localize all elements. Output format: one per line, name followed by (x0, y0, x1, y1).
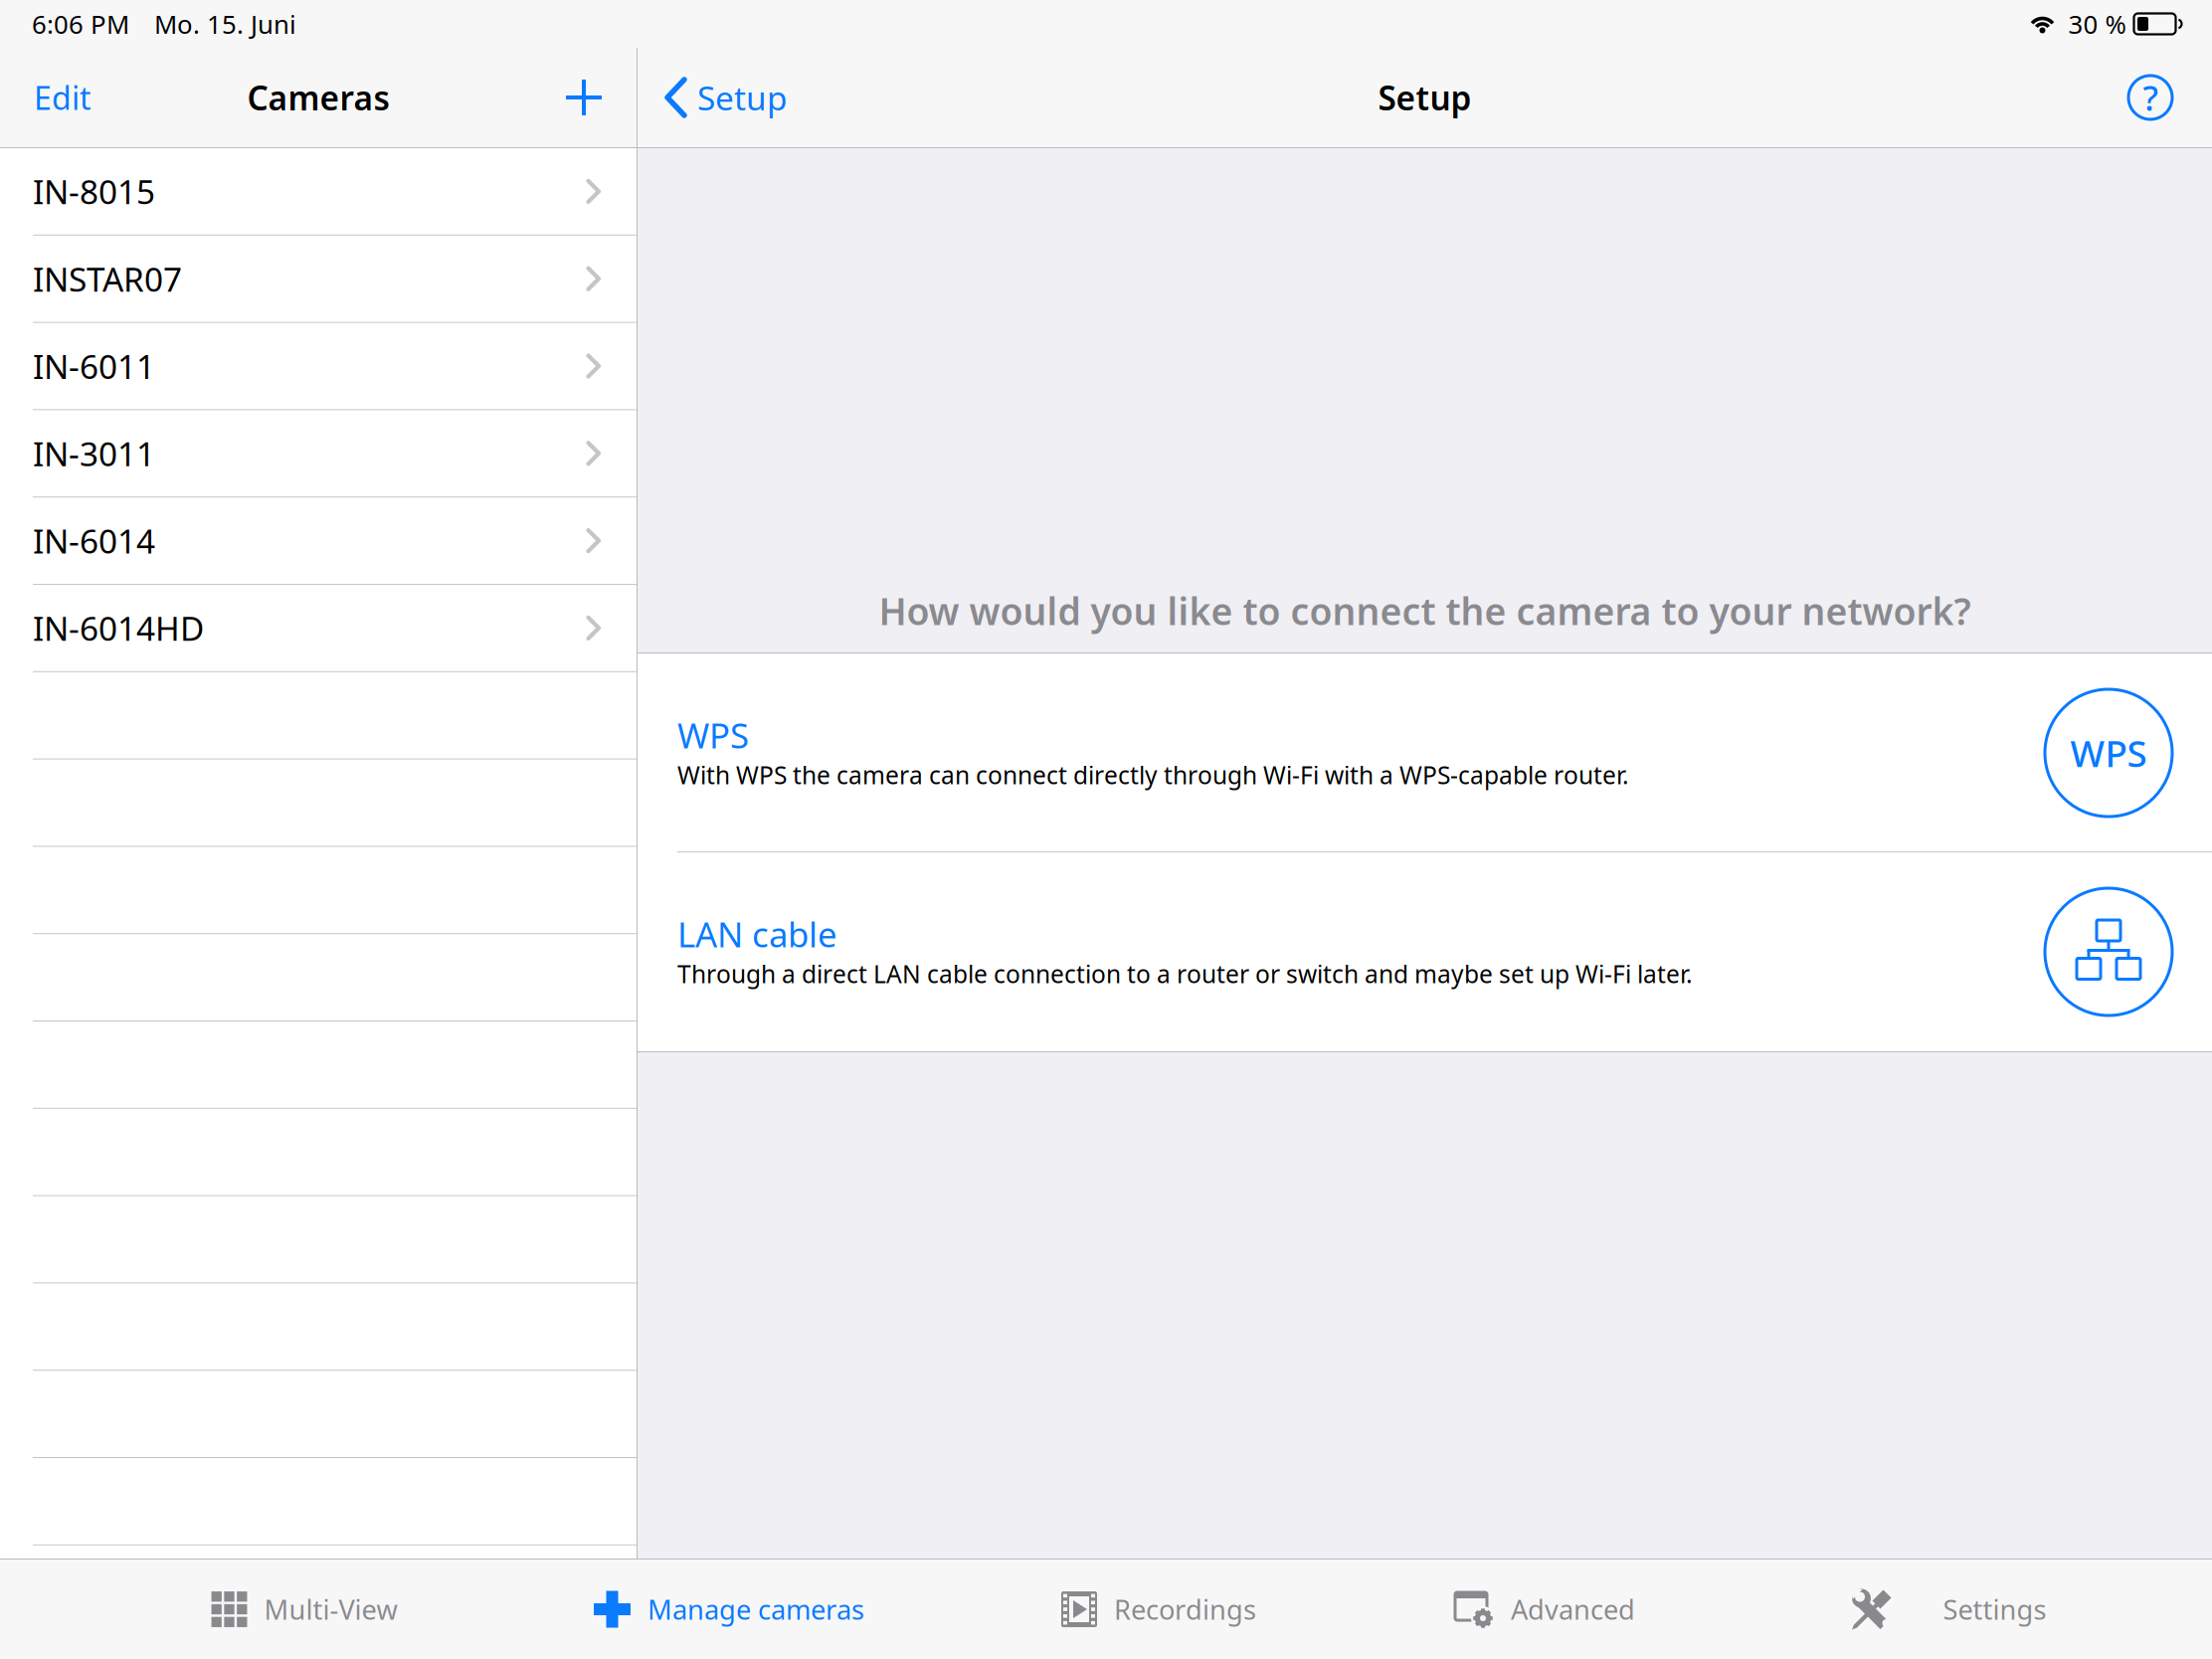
button[interactable]: IN-3011 (0, 410, 637, 498)
staticText: ? (2143, 75, 2158, 120)
button[interactable]: Manage cameras (570, 1560, 888, 1659)
button[interactable]: Add camera (553, 48, 615, 147)
staticText: IN-6011 (33, 344, 155, 388)
button[interactable]: LAN cable (638, 852, 2212, 1051)
button[interactable]: IN-6014HD (0, 585, 637, 672)
staticText: Advanced (1511, 1591, 1635, 1627)
button[interactable]: WPS (638, 653, 2212, 852)
staticText: IN-3011 (33, 431, 155, 475)
button[interactable]: IN-6011 (0, 323, 637, 410)
staticText: WPS (677, 712, 749, 758)
button[interactable]: INSTAR07 (0, 236, 637, 323)
button[interactable]: Setup (663, 48, 788, 147)
staticText: INSTAR07 (33, 257, 182, 301)
staticText: 30 % (2068, 7, 2126, 41)
staticText: With WPS the camera can connect directly… (677, 759, 1629, 791)
staticText: Manage cameras (647, 1591, 864, 1627)
button[interactable]: Settings (1790, 1560, 2109, 1659)
staticText: LAN cable (677, 911, 837, 957)
button[interactable]: IN-8015 (0, 148, 637, 236)
staticText: IN-8015 (33, 169, 155, 213)
staticText: Multi-View (264, 1591, 397, 1627)
button[interactable]: IN-6014 (0, 498, 637, 585)
button[interactable]: Recordings (1000, 1560, 1318, 1659)
staticText: Mo. 15. Juni (154, 7, 296, 41)
button[interactable]: Help (2120, 48, 2181, 147)
button[interactable]: Advanced (1385, 1560, 1704, 1659)
staticText: IN-6014 (33, 519, 155, 563)
staticText: Setup (697, 75, 788, 120)
staticText: Setup (1378, 75, 1472, 120)
staticText: How would you like to connect the camera… (879, 586, 1971, 635)
staticText: Through a direct LAN cable connection to… (677, 958, 1693, 990)
staticText: 6:06 PM (32, 7, 129, 41)
staticText: Edit (34, 76, 92, 119)
staticText: Settings (1943, 1591, 2046, 1627)
staticText: Cameras (247, 75, 389, 120)
button[interactable]: Edit (34, 48, 107, 147)
button[interactable]: Multi-View (145, 1560, 463, 1659)
staticText: WPS (2070, 729, 2147, 777)
staticText: Recordings (1114, 1591, 1256, 1627)
staticText: IN-6014HD (33, 606, 204, 650)
